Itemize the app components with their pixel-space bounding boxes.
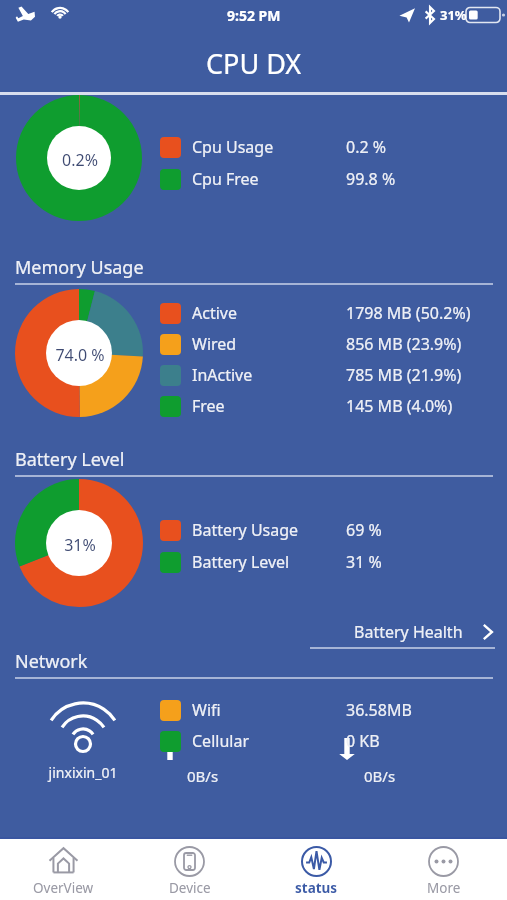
staticText: 0B/s: [187, 766, 219, 786]
staticText: OverView: [33, 879, 94, 897]
staticText: Battery Level: [15, 447, 125, 472]
staticText: 69 %: [346, 519, 382, 541]
staticText: InActive: [192, 364, 253, 386]
staticText: Cpu Free: [192, 168, 259, 190]
staticText: status: [295, 879, 338, 897]
staticText: 0B/s: [364, 766, 396, 786]
staticText: Wired: [192, 333, 237, 355]
staticText: 0.2%: [55, 149, 105, 171]
staticText: More: [427, 879, 461, 897]
staticText: Battery Usage: [192, 519, 299, 541]
staticText: Battery Level: [192, 551, 290, 573]
staticText: 0 KB: [346, 730, 380, 752]
staticText: jinxixin_01: [33, 763, 133, 782]
staticText: CPU DX: [206, 45, 302, 82]
staticText: Device: [169, 879, 211, 897]
staticText: 856 MB (23.9%): [346, 333, 462, 355]
staticText: Free: [192, 395, 225, 417]
staticText: 74.0 %: [49, 344, 111, 366]
staticText: Network: [15, 649, 88, 674]
button[interactable]: Battery Health: [0, 617, 507, 647]
staticText: 99.8 %: [346, 168, 396, 190]
staticText: 1798 MB (50.2%): [346, 302, 471, 324]
button[interactable]: Device: [126, 839, 253, 900]
staticText: Cellular: [192, 730, 249, 752]
staticText: Cpu Usage: [192, 136, 274, 158]
staticText: 785 MB (21.9%): [346, 364, 462, 386]
staticText: Wifi: [192, 699, 221, 721]
staticText: Memory Usage: [15, 255, 144, 280]
staticText: 31%: [440, 6, 467, 24]
staticText: Battery Health: [354, 621, 463, 643]
staticText: Active: [192, 302, 237, 324]
staticText: 145 MB (4.0%): [346, 395, 453, 417]
button[interactable]: status: [253, 839, 380, 900]
button[interactable]: OverView: [0, 839, 126, 900]
staticText: 31 %: [346, 551, 382, 573]
staticText: 36.58MB: [346, 699, 412, 721]
button[interactable]: More: [380, 839, 507, 900]
staticText: 9:52 PM: [227, 6, 281, 25]
staticText: 0.2 %: [346, 136, 387, 158]
staticText: 31%: [56, 534, 104, 556]
